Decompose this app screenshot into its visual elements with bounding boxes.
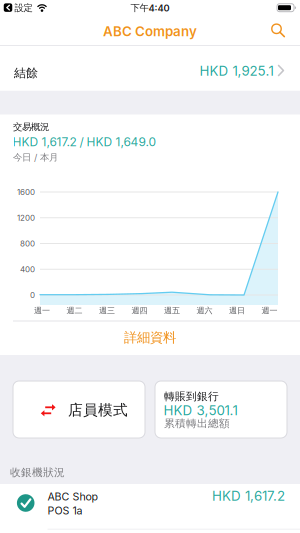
staticText: HKD 1,617.2 / HKD 1,649.0	[12, 135, 156, 149]
button[interactable]: 設定	[0, 0, 52, 16]
staticText: 1600	[17, 187, 35, 197]
staticText: POS 1a	[47, 504, 82, 517]
staticText: 800	[20, 239, 35, 248]
staticText: 1200	[17, 213, 35, 222]
staticText: 週一	[261, 306, 277, 315]
button[interactable]: Search	[266, 18, 292, 44]
staticText: 詳細資料	[124, 329, 176, 346]
staticText: HKD 1,617.2	[212, 488, 285, 504]
staticText: 收銀機狀況	[10, 466, 65, 479]
staticText: 週三	[99, 306, 115, 315]
staticText: 店員模式	[68, 401, 128, 419]
staticText: HKD 1,925.1	[199, 63, 273, 79]
staticText: 設定	[14, 2, 32, 14]
staticText: 400	[20, 264, 35, 274]
button[interactable]: 轉賬到銀行	[155, 381, 287, 438]
staticText: 週五	[164, 306, 180, 315]
staticText: 週二	[66, 306, 82, 315]
button[interactable]: ABC Shop	[0, 484, 300, 533]
staticText: 結餘	[14, 66, 38, 80]
button[interactable]: 結餘	[0, 46, 300, 90]
staticText: 今日 / 本月	[13, 152, 58, 163]
staticText: HKD 3,501.1	[163, 403, 237, 418]
staticText: ABC Company	[103, 24, 197, 39]
staticText: 交易概況	[13, 121, 49, 133]
button[interactable]: 詳細資料	[6, 324, 293, 350]
staticText: 週一	[34, 306, 50, 315]
staticText: 下午4:40	[130, 2, 169, 14]
button[interactable]: 店員模式	[13, 381, 145, 438]
staticText: 轉賬到銀行	[164, 390, 219, 403]
staticText: 週四	[131, 306, 147, 315]
staticText: 週日	[229, 306, 245, 315]
staticText: 累積轉出總額	[164, 417, 230, 430]
staticText: 週六	[196, 306, 212, 315]
staticText: 0	[30, 290, 35, 300]
staticText: ABC Shop	[47, 490, 98, 503]
